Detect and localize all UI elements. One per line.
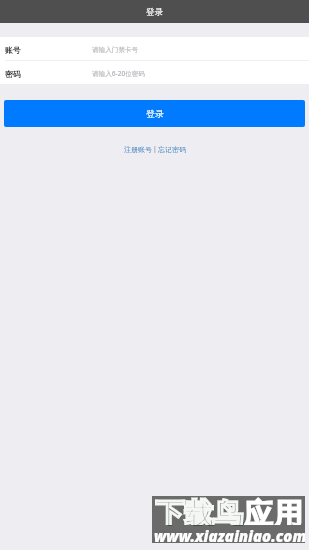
staticText: 请输入6-20位密码	[92, 69, 145, 78]
button[interactable]: 账号	[0, 37, 309, 60]
button[interactable]: 登录	[4, 100, 305, 127]
staticText: 下载鸟	[156, 497, 245, 526]
staticText: 下载鸟	[155, 496, 244, 525]
staticText: 应用	[244, 496, 303, 525]
staticText: 登录	[146, 7, 163, 18]
button[interactable]: 忘记密码	[158, 145, 186, 154]
staticText: 密码	[5, 69, 21, 79]
button[interactable]: 密码	[0, 61, 309, 84]
staticText: 下载鸟	[155, 496, 244, 525]
button[interactable]: 注册账号	[124, 145, 152, 154]
staticText: |	[153, 144, 157, 154]
staticText: www.xiazainiao.com	[154, 526, 305, 543]
staticText: 请输入门禁卡号	[92, 46, 139, 54]
staticText: 账号	[5, 45, 21, 55]
staticText: 登录	[146, 108, 164, 119]
